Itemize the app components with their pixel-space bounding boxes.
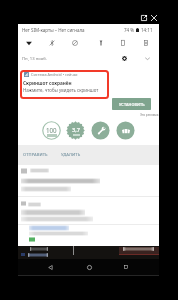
staticText: Это реклама [140,113,159,117]
staticText: Скриншот сохранён [23,80,72,86]
staticText: Нажмите, чтобы увидеть скриншот [23,87,99,93]
staticText: Система Android • сейчас [31,72,78,77]
button[interactable]: Flashlight [94,36,108,50]
button[interactable]: УСТАНОВИТЬ [112,98,151,110]
button[interactable]: Recent apps [117,258,135,276]
staticText: Пн, 13 нояб. [22,56,47,62]
staticText: Нет SIM-карты – Нет сигнала [22,27,85,33]
button[interactable]: Wi-Fi [22,36,36,50]
staticText: 3,7 [72,126,80,134]
button[interactable]: Home [80,258,98,276]
button[interactable]: Auto-rotate [116,36,130,50]
button[interactable]: Close [148,12,159,23]
staticText: 100 [46,126,57,134]
button[interactable]: Tools [91,121,110,140]
staticText: 14:11 [141,27,153,33]
button[interactable]: Do not disturb [68,36,82,50]
button[interactable]: Categories [116,121,135,140]
button[interactable]: Open full size image [138,12,149,23]
button[interactable]: ОТПРАВИТЬ [20,147,51,162]
staticText: УСТАНОВИТЬ [119,102,145,107]
staticText: 74 % [124,27,135,33]
button[interactable]: Bluetooth [45,36,59,50]
button[interactable]: Battery saver [139,36,153,50]
button[interactable]: Android System [24,72,29,77]
button[interactable]: Rating 3,7 [66,121,85,140]
button[interactable]: Back [41,258,59,276]
button[interactable]: Expand [141,52,153,64]
staticText: УДАЛИТЬ [61,152,81,158]
button[interactable]: Settings [118,52,130,64]
button[interactable]: УДАЛИТЬ [57,147,84,162]
staticText: ОТПРАВИТЬ [23,152,48,158]
button[interactable]: Score 100 [42,121,61,140]
